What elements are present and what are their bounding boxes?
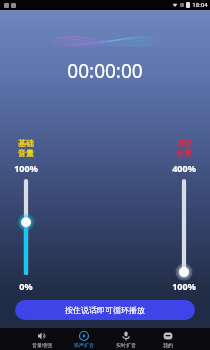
staticText: 100% [14,162,38,174]
staticText: 按住说话即可循环播放 [65,305,145,315]
staticText: 音量 [18,148,34,158]
staticText: 音量 [176,148,192,158]
button[interactable]: Volume slider [174,179,194,275]
button[interactable]: 我的 [147,328,189,350]
staticText: 增强 [176,138,192,148]
staticText: 基础 [18,138,34,148]
staticText: 18:04 [192,1,208,9]
staticText: 音量增强 [32,342,52,348]
staticText: 100% [172,280,196,292]
staticText: 实时扩音 [116,342,136,348]
button[interactable]: 噪声扩音 [63,328,105,350]
button[interactable]: 音量增强 [21,328,63,350]
staticText: 我的 [163,342,173,348]
button[interactable]: 按住说话即可循环播放 [15,300,195,320]
staticText: 0% [19,280,33,292]
button[interactable]: Volume slider [16,179,36,275]
button[interactable]: 实时扩音 [105,328,147,350]
staticText: 00:00:00 [67,58,143,84]
staticText: 噪声扩音 [74,342,94,348]
staticText: 400% [172,162,196,174]
